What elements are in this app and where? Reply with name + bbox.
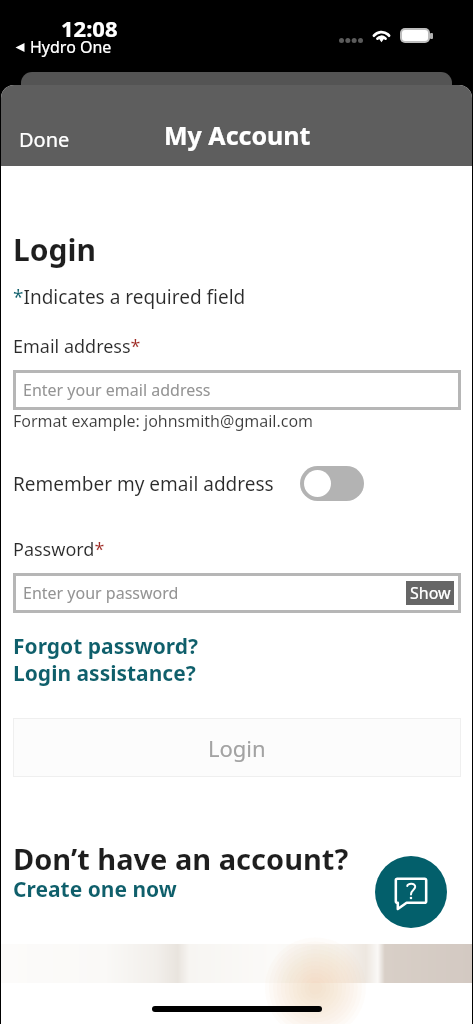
staticText: Enter your email address [23, 379, 211, 401]
staticText: 12:08 [61, 13, 118, 43]
staticText: Show [410, 582, 451, 604]
staticText: Login assistance? [13, 659, 196, 688]
button[interactable]: Email address field [13, 370, 461, 410]
staticText: Hydro One [30, 36, 112, 58]
staticText: Done [19, 126, 70, 153]
staticText: Password* [13, 537, 105, 562]
staticText: Format example: johnsmith@gmail.com [13, 410, 314, 432]
button[interactable]: Login assistance? [13, 659, 196, 688]
button[interactable]: Create one now [13, 875, 177, 904]
button[interactable]: Show [406, 581, 454, 605]
staticText: Don’t have an account? [13, 839, 349, 878]
staticText: *Indicates a required field [13, 284, 246, 310]
staticText: Email address* [13, 334, 141, 359]
button[interactable]: Login [13, 718, 461, 777]
staticText: Remember my email address [13, 471, 274, 497]
staticText: Forgot password? [13, 632, 199, 661]
staticText: Login [208, 733, 266, 763]
button[interactable]: Remember my email address toggle [300, 466, 364, 501]
button[interactable]: Help chat [375, 856, 447, 928]
staticText: Create one now [13, 875, 177, 904]
button[interactable]: Forgot password? [13, 632, 199, 661]
staticText: Enter your password [23, 582, 179, 604]
button[interactable]: Done [9, 118, 80, 161]
staticText: My Account [164, 118, 311, 152]
staticText: Login [13, 229, 96, 270]
